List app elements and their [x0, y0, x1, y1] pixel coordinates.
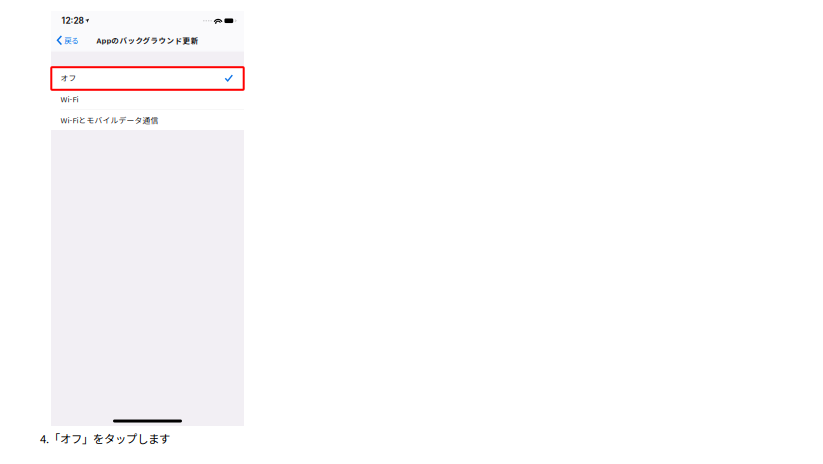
staticText: Appのバックグラウンド更新 — [96, 35, 198, 46]
button[interactable]: Wi-Fi — [51, 89, 244, 109]
staticText: 12:28 — [61, 16, 83, 26]
button[interactable]: オフ — [51, 68, 244, 88]
button[interactable]: 戻る — [51, 30, 91, 50]
button[interactable]: Wi-Fiとモバイルデータ通信 — [51, 110, 244, 130]
staticText: 4.「オフ」をタップします — [40, 430, 170, 446]
staticText: オフ — [60, 72, 76, 84]
staticText: Wi-Fi — [60, 93, 78, 104]
staticText: 戻る — [64, 35, 78, 46]
staticText: Wi-Fiとモバイルデータ通信 — [60, 114, 158, 125]
